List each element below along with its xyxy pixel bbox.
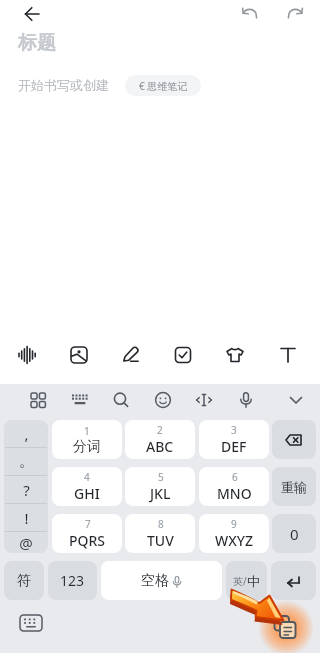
button[interactable]: 6 xyxy=(199,467,269,506)
button[interactable] xyxy=(172,344,194,366)
button[interactable]: 2 xyxy=(125,420,195,459)
button[interactable]: 123 xyxy=(48,561,97,600)
staticText: € 思维笔记 xyxy=(139,79,188,93)
staticText: 标题 xyxy=(18,31,56,55)
button[interactable] xyxy=(194,390,214,410)
staticText: 123 xyxy=(60,571,85,590)
staticText: 中 xyxy=(247,573,260,589)
staticText: 9 xyxy=(231,517,237,531)
button[interactable] xyxy=(68,344,90,366)
button[interactable]: 重输 xyxy=(272,467,316,506)
staticText: 英 xyxy=(233,575,243,588)
staticText: 4 xyxy=(84,470,90,484)
staticText: ABC xyxy=(146,437,174,456)
button[interactable] xyxy=(16,344,38,366)
staticText: ? xyxy=(23,480,30,500)
button[interactable] xyxy=(224,344,246,366)
staticText: JKL xyxy=(150,484,171,503)
staticText: @ xyxy=(19,533,33,553)
staticText: 。 xyxy=(19,452,34,471)
staticText: 5 xyxy=(158,470,164,484)
button[interactable] xyxy=(271,561,316,600)
staticText: / xyxy=(243,574,247,588)
staticText: 2 xyxy=(157,423,163,437)
button[interactable]: 开始书写或创建 xyxy=(18,77,109,93)
staticText: 6 xyxy=(232,470,238,484)
button[interactable]: 4 xyxy=(52,467,122,506)
button[interactable] xyxy=(70,391,90,409)
staticText: , xyxy=(24,424,29,444)
button[interactable]: 1 xyxy=(52,420,122,459)
button[interactable] xyxy=(236,390,256,410)
staticText: WXYZ xyxy=(215,531,253,550)
button[interactable]: 7 xyxy=(52,514,122,553)
staticText: DEF xyxy=(221,437,247,456)
staticText: 3 xyxy=(231,423,237,437)
button[interactable] xyxy=(28,390,48,410)
button[interactable] xyxy=(277,344,299,366)
button[interactable] xyxy=(272,420,316,459)
button[interactable]: 8 xyxy=(125,514,195,553)
button[interactable] xyxy=(285,4,305,22)
staticText: 7 xyxy=(85,517,91,531)
button[interactable]: 符 xyxy=(4,561,44,600)
staticText: MNO xyxy=(217,484,252,503)
staticText: ! xyxy=(24,508,29,528)
staticText: 重输 xyxy=(281,479,307,495)
button[interactable]: , xyxy=(4,420,48,553)
staticText: 空格 xyxy=(141,572,169,590)
button[interactable] xyxy=(153,390,173,410)
button[interactable] xyxy=(18,612,44,634)
button[interactable] xyxy=(111,390,131,410)
button[interactable]: 5 xyxy=(125,467,195,506)
staticText: 分词 xyxy=(73,438,101,456)
button[interactable]: 0 xyxy=(272,514,316,553)
staticText: 1 xyxy=(84,424,90,438)
button[interactable] xyxy=(286,391,306,409)
staticText: 0 xyxy=(290,524,299,544)
staticText: 开始书写或创建 xyxy=(18,77,109,93)
button[interactable]: 空格 xyxy=(101,561,222,600)
button[interactable]: 英 xyxy=(226,561,267,600)
button[interactable]: 3 xyxy=(199,420,269,459)
button[interactable] xyxy=(23,5,41,23)
staticText: GHI xyxy=(74,484,100,503)
staticText: 符 xyxy=(17,572,31,590)
button[interactable] xyxy=(240,4,260,22)
staticText: TUV xyxy=(147,531,174,550)
button[interactable]: 9 xyxy=(199,514,269,553)
staticText: 8 xyxy=(158,517,164,531)
button[interactable] xyxy=(271,612,301,644)
staticText: PQRS xyxy=(69,531,106,550)
button[interactable]: € 思维笔记 xyxy=(125,75,201,96)
button[interactable] xyxy=(120,344,142,366)
button[interactable]: 标题 xyxy=(18,31,56,55)
